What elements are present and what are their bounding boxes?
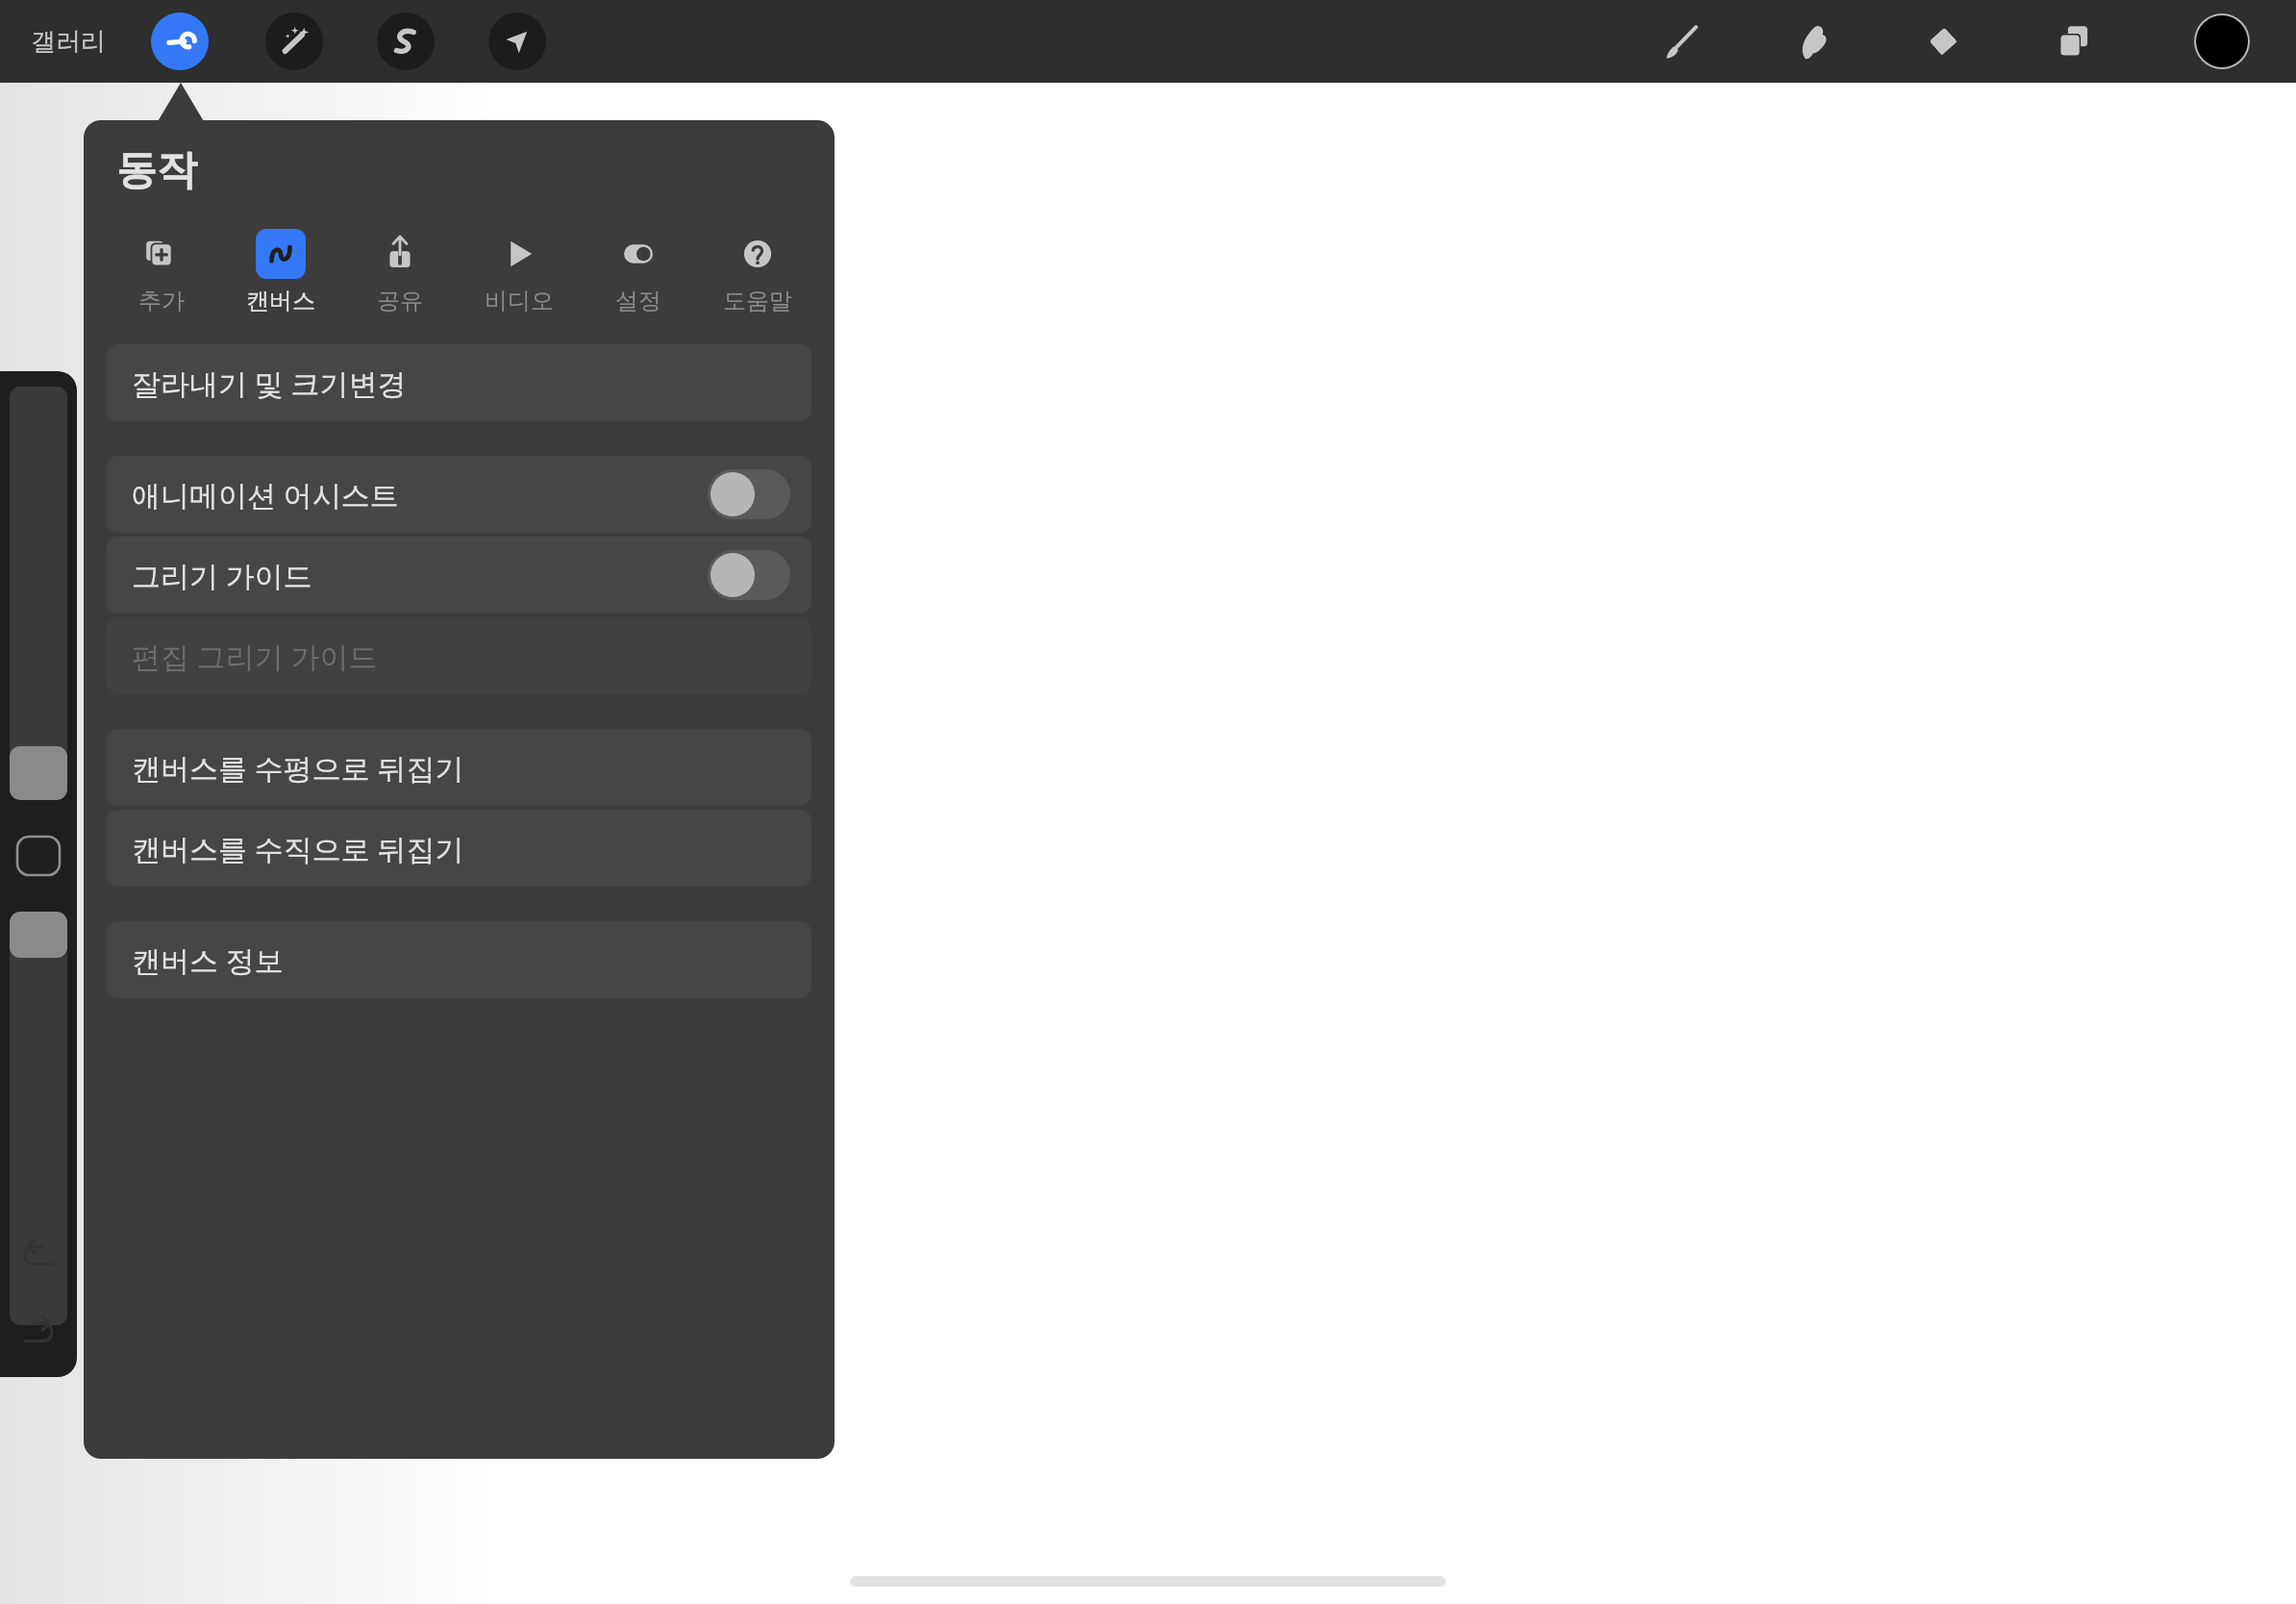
button[interactable]: 비디오 [460,225,579,319]
button[interactable]: 잘라내기 및 크기변경 [107,344,811,421]
button[interactable]: 공유 [340,225,460,319]
button[interactable]: 애니메이션 어시스트 [107,456,811,533]
staticText: 애니메이션 어시스트 [132,475,399,514]
staticText: 그리기 가이드 [132,556,312,595]
button[interactable]: 그리기 가이드 [107,537,811,614]
button[interactable]: 조정 [265,13,323,70]
button[interactable]: 추가 [101,225,221,319]
staticText: 추가 [138,287,185,315]
button[interactable]: 캔버스를 수직으로 뒤집기 [107,810,811,887]
button[interactable]: 동작 [151,13,209,70]
staticText: 잘라내기 및 크기변경 [132,363,407,403]
button[interactable]: 지우개 [1911,10,1975,73]
button[interactable]: 도움말 [698,225,817,319]
button[interactable]: 브러시 크기 [10,387,67,800]
staticText: 캔버스 [246,287,315,315]
staticText: 캔버스를 수평으로 뒤집기 [132,748,464,788]
button[interactable]: 선택 [377,13,435,70]
button[interactable]: 레이어 [2042,10,2106,73]
staticText: 도움말 [723,287,792,315]
button[interactable]: 브러시 [1650,10,1713,73]
staticText: 편집 그리기 가이드 [132,637,378,676]
staticText: 동작 [116,145,197,196]
button[interactable]: 캔버스를 수평으로 뒤집기 [107,729,811,806]
button[interactable]: 수정 [17,837,60,875]
button[interactable]: 설정 [579,225,698,319]
button[interactable]: 다시 실행 [8,1300,69,1362]
staticText: 설정 [615,287,661,315]
button[interactable]: 캔버스 [221,225,340,319]
button[interactable]: 실행 취소 [8,1223,69,1285]
button[interactable]: 편집 그리기 가이드 [107,617,811,694]
button[interactable]: 갤러리 [17,18,119,65]
button[interactable]: 불투명도 [10,912,67,1325]
button[interactable]: 캔버스 정보 [107,921,811,998]
button[interactable]: 변형 [488,13,546,70]
button[interactable]: 색상 [2196,15,2248,67]
staticText: 비디오 [485,287,554,315]
staticText: 갤러리 [31,26,106,58]
staticText: 캔버스 정보 [132,940,284,980]
button[interactable]: 문지르기 [1781,10,1844,73]
staticText: 공유 [377,287,423,315]
staticText: 캔버스를 수직으로 뒤집기 [132,829,464,868]
